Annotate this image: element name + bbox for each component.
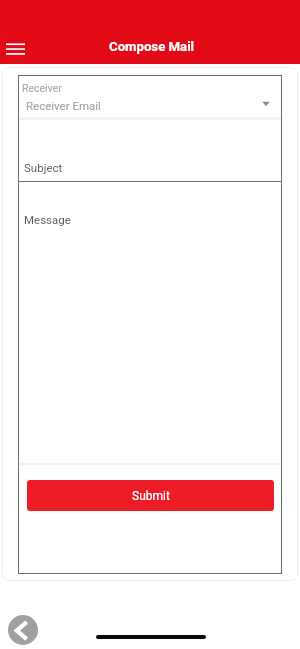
staticText: Receiver Email	[26, 99, 101, 112]
button[interactable]: Message	[18, 182, 282, 464]
button[interactable]: Back	[8, 615, 38, 645]
button[interactable]: Menu	[2, 35, 29, 60]
staticText: Compose Mail	[109, 39, 195, 54]
staticText: Message	[24, 213, 71, 226]
button[interactable]: Subject	[18, 135, 282, 181]
button[interactable]: Receiver	[18, 75, 282, 119]
staticText: Submit	[132, 489, 170, 503]
button[interactable]: Submit	[27, 480, 274, 511]
staticText: Receiver	[22, 82, 62, 94]
staticText: Subject	[24, 161, 63, 174]
